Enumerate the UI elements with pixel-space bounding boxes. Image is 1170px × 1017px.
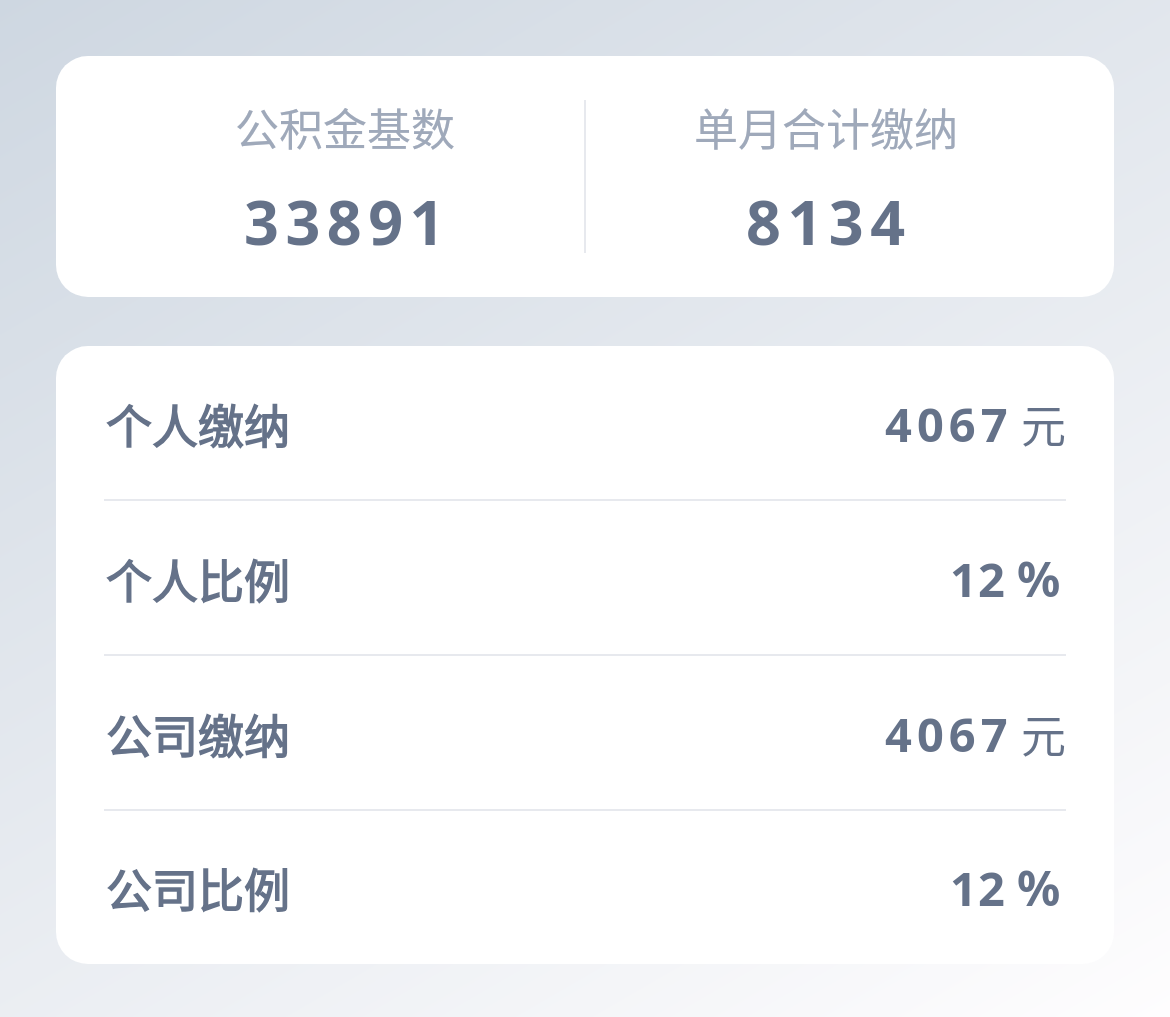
staticText: 4067 [885,392,1013,456]
staticText: 公积金基数 [235,95,455,159]
button[interactable]: 个人缴纳 [56,346,1114,501]
button[interactable]: 公司缴纳 [56,656,1114,811]
staticText: 公司缴纳 [106,700,290,767]
staticText: 单月合计缴纳 [694,95,958,159]
staticText: 个人缴纳 [106,390,290,457]
staticText: 4067 [885,702,1013,766]
button[interactable]: 公司比例 [56,811,1114,964]
staticText: 33891 [244,180,451,263]
staticText: 个人比例 [106,545,290,612]
staticText: 元 [1021,701,1067,766]
staticText: 公司比例 [106,854,290,921]
button[interactable]: 公积金基数 [104,56,585,297]
staticText: 12 [950,856,1006,920]
staticText: 12 [950,547,1006,611]
staticText: % [1017,855,1061,920]
staticText: % [1017,546,1061,611]
staticText: 8134 [746,180,912,263]
button[interactable]: 个人比例 [56,501,1114,656]
button[interactable]: 单月合计缴纳 [585,56,1066,297]
staticText: 元 [1021,391,1067,456]
